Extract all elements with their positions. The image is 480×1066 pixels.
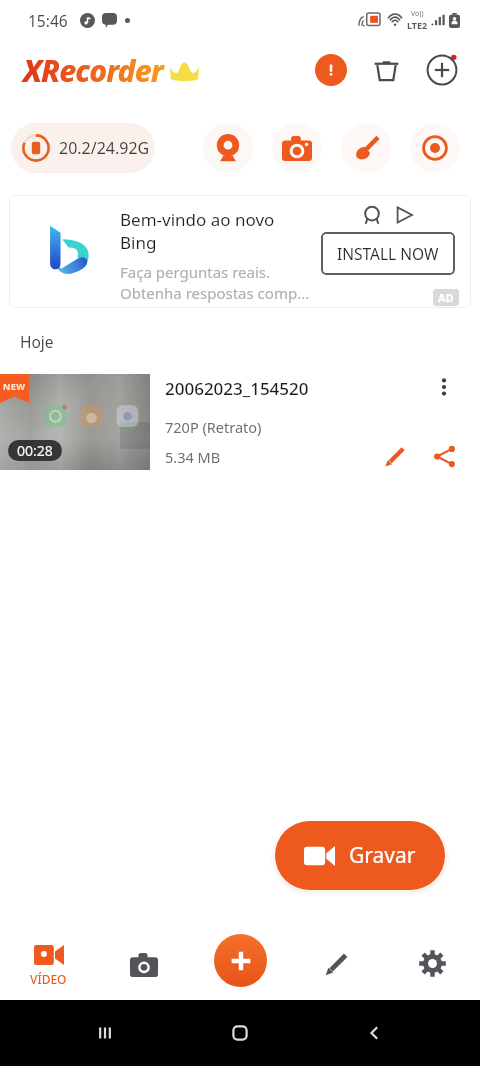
button[interactable]: Edit video: [377, 443, 413, 470]
staticText: XRecorder: [23, 50, 163, 91]
staticText: LTE2: [407, 19, 428, 31]
button[interactable]: Share video: [426, 443, 462, 470]
button[interactable]: VÍDEO: [0, 900, 96, 1000]
button[interactable]: Back: [360, 1018, 390, 1048]
staticText: 20062023_154520: [165, 377, 309, 400]
button[interactable]: Recents: [90, 1018, 120, 1048]
button[interactable]: Brush: [341, 123, 391, 173]
button[interactable]: INSTALL NOW: [321, 232, 455, 275]
staticText: 00:28: [17, 441, 53, 460]
staticText: VÍDEO: [30, 971, 67, 987]
button[interactable]: Screenshots: [96, 900, 192, 1000]
button[interactable]: Webcam: [203, 123, 253, 173]
button[interactable]: More options: [427, 370, 461, 404]
staticText: 720P (Retrato): [165, 417, 262, 437]
button[interactable]: Settings: [384, 900, 480, 1000]
button[interactable]: Edit: [288, 900, 384, 1000]
staticText: Bem-vindo ao novo Bing: [120, 208, 275, 254]
staticText: 20.2/24.92G: [59, 137, 150, 159]
staticText: 15:46: [28, 10, 68, 31]
button[interactable]: Record: [410, 123, 460, 173]
staticText: NEW: [3, 380, 26, 392]
staticText: Faça perguntas reais. Obtenha respostas …: [120, 262, 310, 304]
staticText: 5.34 MB: [165, 447, 221, 467]
button[interactable]: New recording: [192, 900, 288, 1000]
button[interactable]: 20.2/24.92G: [11, 123, 155, 173]
button[interactable]: Add: [422, 50, 462, 90]
staticText: AD: [438, 290, 454, 305]
staticText: Hoje: [20, 331, 54, 352]
button[interactable]: Alerts: [311, 50, 351, 90]
button[interactable]: Bem-vindo ao novo Bing: [9, 195, 471, 308]
button[interactable]: Home: [225, 1018, 255, 1048]
button[interactable]: Delete: [366, 50, 406, 90]
staticText: Gravar: [349, 841, 416, 870]
button[interactable]: Screenshot: [272, 123, 322, 173]
button[interactable]: Gravar: [275, 821, 445, 890]
staticText: Vo)): [411, 9, 424, 19]
staticText: INSTALL NOW: [337, 243, 439, 264]
